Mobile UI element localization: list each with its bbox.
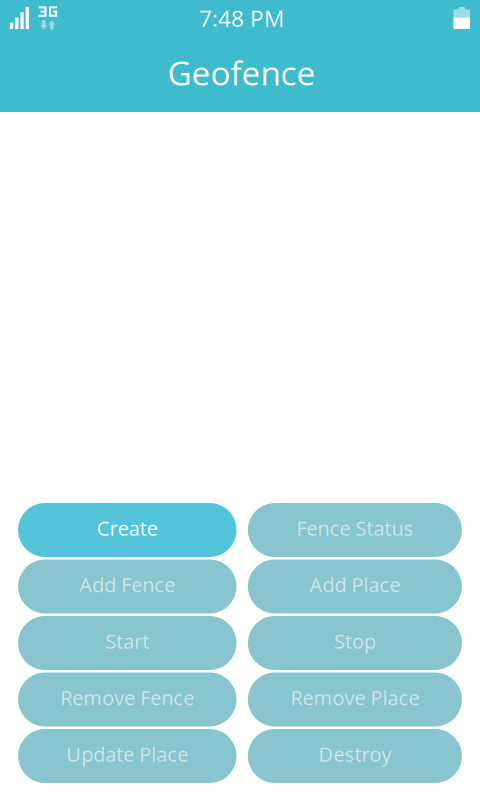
button[interactable]: Remove Place <box>248 672 462 726</box>
button[interactable]: Start <box>18 616 236 670</box>
staticText: Add Fence <box>79 571 175 598</box>
staticText: Create <box>97 514 158 542</box>
staticText: Stop <box>334 627 376 655</box>
button[interactable]: Destroy <box>248 729 462 783</box>
staticText: Remove Place <box>290 684 419 711</box>
staticText: Start <box>105 627 149 655</box>
staticText: Fence Status <box>296 514 413 542</box>
button[interactable]: Create <box>18 503 236 557</box>
staticText: Add Place <box>309 571 400 598</box>
button[interactable]: Update Place <box>18 729 236 783</box>
staticText: Remove Fence <box>60 684 194 711</box>
button[interactable]: Remove Fence <box>18 672 236 726</box>
button[interactable]: Add Place <box>248 559 462 613</box>
staticText: Geofence <box>167 50 315 95</box>
button[interactable]: Add Fence <box>18 559 236 613</box>
button[interactable]: Fence Status <box>248 503 462 557</box>
staticText: Destroy <box>318 740 391 768</box>
button[interactable]: Stop <box>248 616 462 670</box>
staticText: Update Place <box>66 740 188 768</box>
staticText: 7:48 PM <box>199 3 284 33</box>
